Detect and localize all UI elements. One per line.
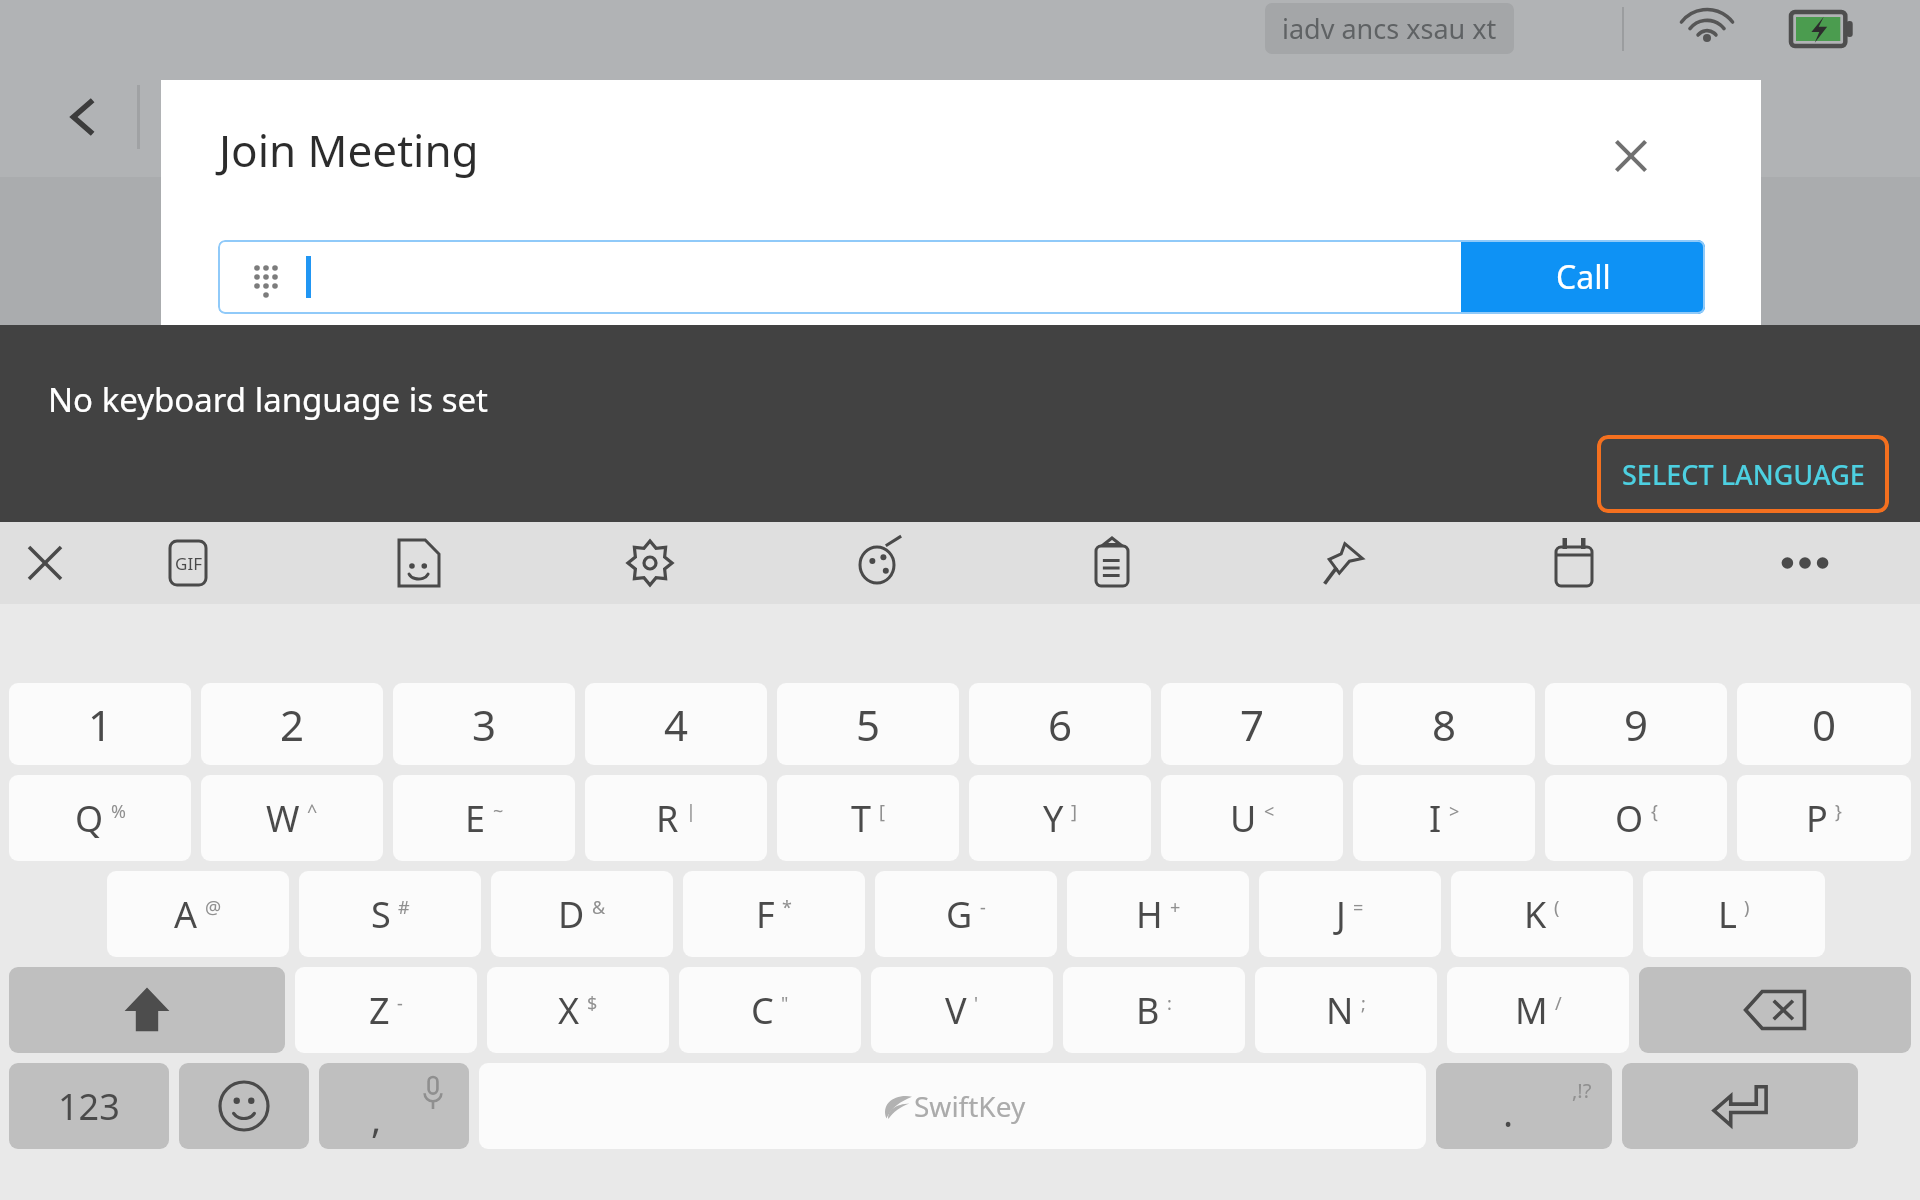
staticText: M bbox=[1515, 986, 1548, 1035]
staticText: ,!? bbox=[1572, 1077, 1592, 1104]
button[interactable]: Y bbox=[969, 775, 1151, 861]
staticText: @ bbox=[205, 895, 222, 920]
staticText: P bbox=[1806, 794, 1828, 843]
button[interactable]: Stickers bbox=[388, 532, 450, 594]
button[interactable]: SELECT LANGUAGE bbox=[1597, 435, 1889, 513]
staticText: + bbox=[1170, 895, 1181, 920]
staticText: E bbox=[465, 794, 486, 843]
button[interactable]: Emoji bbox=[179, 1063, 309, 1149]
button[interactable]: GIF bbox=[157, 532, 219, 594]
staticText: 9 bbox=[1624, 696, 1649, 753]
staticText: O bbox=[1615, 794, 1644, 843]
button[interactable]: G bbox=[875, 871, 1057, 957]
staticText: ) bbox=[1744, 895, 1750, 920]
button[interactable]: Settings bbox=[619, 532, 681, 594]
button[interactable]: Clipboard bbox=[1081, 532, 1143, 594]
staticText: 1 bbox=[88, 696, 113, 753]
button[interactable]: Q bbox=[9, 775, 191, 861]
button[interactable]: 1 bbox=[9, 683, 191, 765]
staticText: % bbox=[111, 799, 126, 824]
staticText: SwiftKey bbox=[914, 1087, 1026, 1125]
staticText: { bbox=[1651, 799, 1658, 824]
button[interactable]: L bbox=[1643, 871, 1825, 957]
staticText: 3 bbox=[472, 696, 497, 753]
staticText: 123 bbox=[58, 1082, 120, 1131]
staticText: B bbox=[1136, 986, 1160, 1035]
button[interactable]: J bbox=[1259, 871, 1441, 957]
button[interactable]: 8 bbox=[1353, 683, 1535, 765]
button[interactable]: Space bbox=[479, 1063, 1426, 1149]
staticText: No keyboard language is set bbox=[48, 377, 488, 422]
staticText: V bbox=[945, 986, 967, 1035]
button[interactable]: A bbox=[107, 871, 289, 957]
staticText: Call bbox=[1556, 255, 1611, 299]
staticText: I bbox=[1429, 794, 1442, 843]
staticText: ~ bbox=[493, 799, 504, 824]
staticText: C bbox=[751, 986, 774, 1035]
staticText: / bbox=[1555, 991, 1562, 1016]
staticText: L bbox=[1718, 890, 1737, 939]
button[interactable]: S bbox=[299, 871, 481, 957]
button[interactable]: Close keyboard panel bbox=[16, 534, 74, 592]
staticText: = bbox=[1353, 895, 1364, 920]
button[interactable]: I bbox=[1353, 775, 1535, 861]
button[interactable]: Call bbox=[1461, 240, 1705, 314]
button[interactable]: 123 bbox=[9, 1063, 169, 1149]
button[interactable]: Back bbox=[60, 93, 108, 141]
button[interactable]: T bbox=[777, 775, 959, 861]
button[interactable]: O bbox=[1545, 775, 1727, 861]
button[interactable]: 5 bbox=[777, 683, 959, 765]
button[interactable]: Comma and voice input bbox=[319, 1063, 469, 1149]
button[interactable]: Enter bbox=[1622, 1063, 1858, 1149]
button[interactable]: iadv ancs xsau xt bbox=[1282, 10, 1497, 47]
button[interactable]: D bbox=[491, 871, 673, 957]
button[interactable]: F bbox=[683, 871, 865, 957]
button[interactable]: 0 bbox=[1737, 683, 1911, 765]
button[interactable]: E bbox=[393, 775, 575, 861]
button[interactable]: 6 bbox=[969, 683, 1151, 765]
button[interactable]: V bbox=[871, 967, 1053, 1053]
staticText: ; bbox=[1361, 991, 1366, 1016]
button[interactable]: K bbox=[1451, 871, 1633, 957]
button[interactable]: P bbox=[1737, 775, 1911, 861]
button[interactable]: R bbox=[585, 775, 767, 861]
button[interactable]: 9 bbox=[1545, 683, 1727, 765]
button[interactable]: B bbox=[1063, 967, 1245, 1053]
button[interactable]: M bbox=[1447, 967, 1629, 1053]
button[interactable]: Themes bbox=[850, 532, 912, 594]
staticText: $ bbox=[587, 991, 598, 1016]
button[interactable]: Calendar bbox=[1543, 532, 1605, 594]
button[interactable]: Pin bbox=[1312, 532, 1374, 594]
button[interactable]: Z bbox=[295, 967, 477, 1053]
staticText: GIF bbox=[175, 552, 202, 575]
button[interactable]: W bbox=[201, 775, 383, 861]
staticText: , bbox=[371, 1092, 382, 1144]
button[interactable]: Meeting ID bbox=[218, 240, 1461, 314]
staticText: - bbox=[980, 895, 986, 920]
button[interactable]: 3 bbox=[393, 683, 575, 765]
staticText: H bbox=[1136, 890, 1163, 939]
staticText: [ bbox=[879, 799, 885, 824]
button[interactable]: 7 bbox=[1161, 683, 1343, 765]
staticText: Z bbox=[369, 986, 390, 1035]
button[interactable]: 4 bbox=[585, 683, 767, 765]
button[interactable]: Close bbox=[1603, 128, 1659, 184]
button[interactable]: Backspace bbox=[1639, 967, 1911, 1053]
button[interactable]: Period bbox=[1436, 1063, 1612, 1149]
staticText: 5 bbox=[856, 696, 881, 753]
staticText: S bbox=[371, 890, 391, 939]
button[interactable]: X bbox=[487, 967, 669, 1053]
button[interactable]: C bbox=[679, 967, 861, 1053]
staticText: U bbox=[1230, 794, 1257, 843]
staticText: 4 bbox=[664, 696, 689, 753]
button[interactable]: 2 bbox=[201, 683, 383, 765]
staticText: | bbox=[686, 799, 696, 824]
button[interactable]: H bbox=[1067, 871, 1249, 957]
staticText: D bbox=[558, 890, 585, 939]
button[interactable]: Shift bbox=[9, 967, 285, 1053]
button[interactable]: U bbox=[1161, 775, 1343, 861]
staticText: : bbox=[1167, 991, 1172, 1016]
button[interactable]: N bbox=[1255, 967, 1437, 1053]
staticText: 6 bbox=[1048, 696, 1073, 753]
button[interactable]: More options bbox=[1774, 532, 1836, 594]
